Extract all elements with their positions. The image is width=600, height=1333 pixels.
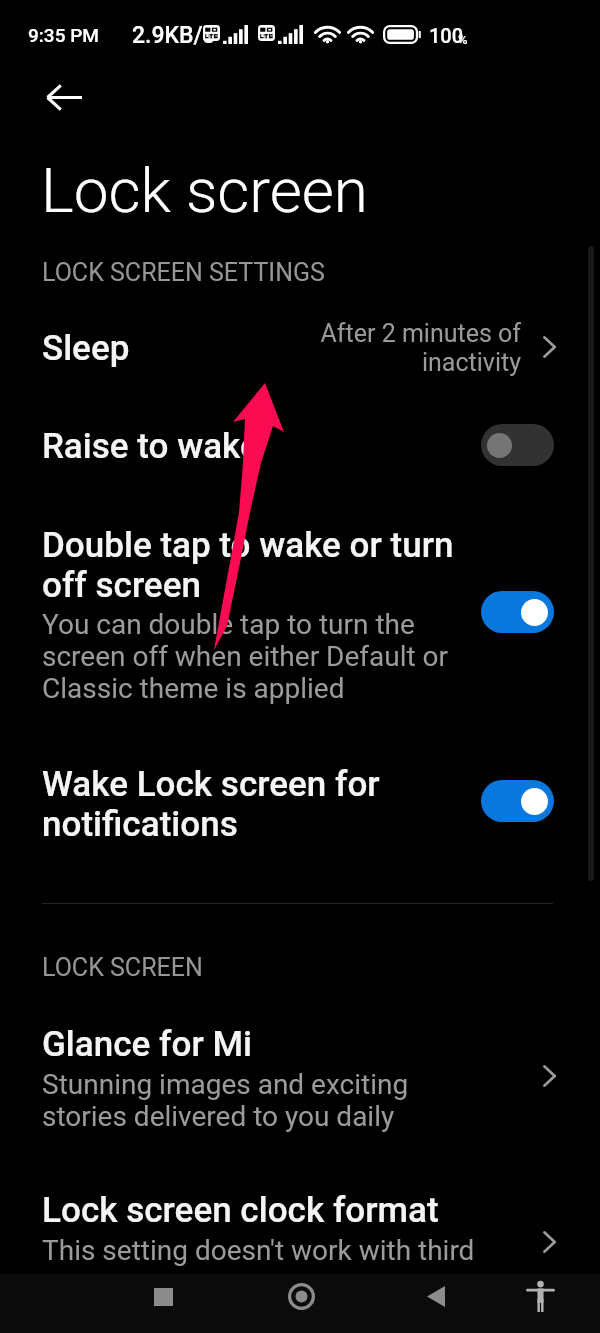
button[interactable]: Double tap to wake or turn off screen xyxy=(0,512,600,707)
button[interactable]: Toggle on xyxy=(481,780,554,822)
staticText: 2.9KB/s xyxy=(132,22,215,49)
button[interactable]: Wake Lock screen for notifications xyxy=(0,751,600,861)
staticText: LOCK SCREEN SETTINGS xyxy=(42,258,325,287)
staticText: This setting doesn't work with third xyxy=(42,1234,492,1267)
staticText: Glance for Mi xyxy=(42,1024,252,1065)
staticText: 9:35 PM xyxy=(28,24,99,46)
staticText: Raise to wake xyxy=(42,426,259,467)
staticText: Sleep xyxy=(42,328,130,369)
staticText: Wake Lock screen for notifications xyxy=(42,764,452,844)
button[interactable]: Recent apps xyxy=(137,1274,189,1319)
staticText: 100 xyxy=(429,24,464,47)
button[interactable]: Back xyxy=(410,1274,462,1319)
button[interactable]: Sleep xyxy=(0,310,600,385)
staticText: Lock screen clock format xyxy=(42,1190,439,1231)
staticText: Double tap to wake or turn off screen xyxy=(42,525,462,605)
button[interactable]: Toggle on xyxy=(481,591,554,633)
button[interactable]: Accessibility xyxy=(514,1274,566,1319)
button[interactable]: Toggle off xyxy=(481,424,554,466)
staticText: After 2 minutes of inactivity xyxy=(290,319,521,377)
button[interactable]: Back xyxy=(33,71,95,123)
staticText: LOCK SCREEN xyxy=(42,953,203,982)
staticText: Lock screen xyxy=(41,154,368,227)
staticText: % xyxy=(458,32,468,47)
button[interactable]: Glance for Mi xyxy=(0,1011,600,1151)
button[interactable]: Home xyxy=(275,1274,327,1319)
button[interactable]: Raise to wake xyxy=(0,406,600,481)
staticText: Stunning images and exciting stories del… xyxy=(42,1068,442,1133)
button[interactable]: Lock screen clock format xyxy=(0,1177,600,1297)
staticText: You can double tap to turn the screen of… xyxy=(42,608,462,705)
